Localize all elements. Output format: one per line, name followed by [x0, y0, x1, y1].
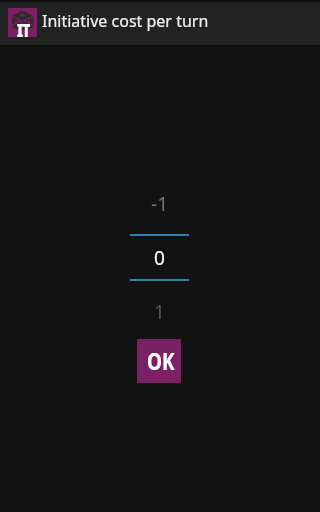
other: Initiative Tracker app icon [8, 8, 37, 37]
staticText: 0 [154, 245, 165, 271]
staticText: IT [17, 19, 30, 42]
staticText: Initiative cost per turn [42, 10, 209, 32]
staticText: 1 [154, 299, 165, 325]
button[interactable]: Initiative Tracker app icon [0, 0, 217, 45]
staticText: -1 [151, 191, 168, 217]
button[interactable]: -1 [130, 189, 189, 219]
button[interactable]: 1 [130, 297, 189, 327]
button[interactable]: 0 [130, 243, 189, 273]
button[interactable]: OK [137, 339, 181, 383]
staticText: OK [147, 345, 175, 376]
